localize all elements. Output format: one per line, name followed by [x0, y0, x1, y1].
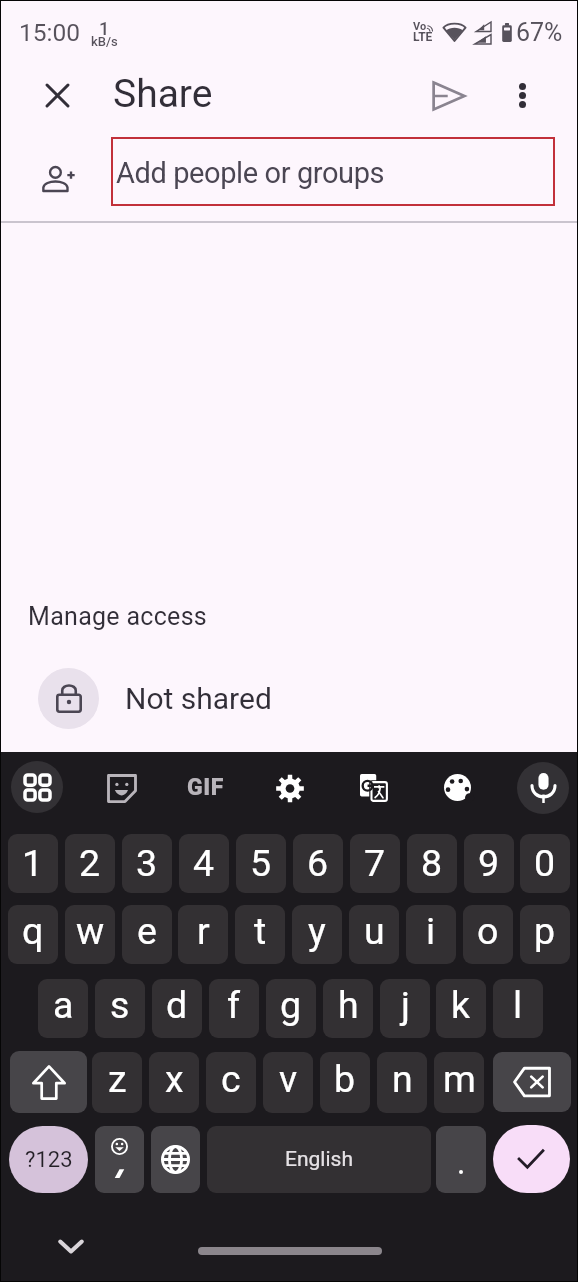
button[interactable]: y — [292, 905, 342, 964]
button[interactable]: r — [178, 905, 228, 964]
staticText: d — [166, 983, 188, 1027]
staticText: Manage access — [28, 602, 208, 631]
button[interactable]: Voice input — [517, 762, 569, 814]
button[interactable]: n — [377, 1052, 427, 1113]
button[interactable]: 3 — [122, 834, 172, 893]
button[interactable]: 7 — [350, 834, 400, 893]
button[interactable]: English — [207, 1126, 431, 1193]
button[interactable]: Period — [436, 1126, 486, 1193]
button[interactable]: d — [152, 979, 202, 1038]
button[interactable]: q — [8, 905, 58, 964]
staticText: Add people or groups — [116, 156, 385, 190]
staticText: r — [197, 909, 210, 953]
staticText: j — [401, 983, 410, 1027]
staticText: z — [108, 1057, 127, 1101]
button[interactable]: Translate — [348, 762, 400, 814]
button[interactable]: Hide keyboard — [48, 1223, 94, 1269]
button[interactable]: Themes — [431, 761, 483, 813]
button[interactable]: Send — [425, 72, 472, 119]
button[interactable]: 2 — [65, 834, 115, 893]
button[interactable]: 6 — [293, 834, 343, 893]
staticText: 15:00 — [19, 18, 81, 47]
staticText: h — [338, 983, 359, 1027]
button[interactable]: m — [434, 1052, 484, 1113]
button[interactable]: s — [95, 979, 145, 1038]
staticText: g — [280, 983, 302, 1027]
button[interactable]: Apps — [11, 761, 63, 813]
staticText: o — [477, 909, 499, 953]
button[interactable]: Change language — [151, 1126, 200, 1193]
button[interactable]: v — [263, 1052, 313, 1113]
button[interactable]: w — [65, 905, 115, 964]
staticText: l — [513, 983, 523, 1027]
button[interactable]: t — [235, 905, 285, 964]
staticText: m — [443, 1057, 476, 1101]
staticText: x — [165, 1057, 184, 1101]
button[interactable]: More options — [499, 72, 546, 119]
staticText: c — [221, 1057, 241, 1101]
button[interactable]: b — [320, 1052, 370, 1113]
button[interactable]: Add people or groups — [111, 137, 555, 206]
button[interactable]: z — [92, 1052, 142, 1113]
staticText: Not shared — [125, 681, 272, 716]
staticText: Vo — [413, 20, 427, 33]
staticText: GIF — [187, 774, 224, 801]
button[interactable]: e — [122, 905, 172, 964]
button[interactable]: Close — [34, 72, 81, 119]
staticText: s — [110, 983, 130, 1027]
button[interactable]: f — [209, 979, 259, 1038]
button[interactable]: Backspace — [493, 1052, 571, 1112]
button[interactable]: k — [436, 979, 486, 1038]
button[interactable]: Stickers — [96, 762, 148, 814]
staticText: w — [76, 909, 105, 953]
button[interactable]: 8 — [407, 834, 457, 893]
staticText: 4 — [193, 841, 215, 885]
staticText: 1 — [22, 841, 44, 885]
button[interactable]: 1 — [8, 834, 58, 893]
staticText: English — [285, 1147, 353, 1172]
button[interactable]: 5 — [236, 834, 286, 893]
button[interactable]: x — [149, 1052, 199, 1113]
staticText: LTE — [413, 30, 433, 44]
staticText: q — [22, 909, 44, 953]
button[interactable]: 4 — [179, 834, 229, 893]
staticText: b — [334, 1057, 356, 1101]
staticText: p — [534, 909, 556, 953]
staticText: 1 — [99, 18, 110, 39]
button[interactable]: Shift — [10, 1051, 87, 1113]
button[interactable]: Not shared — [38, 668, 99, 729]
staticText: ?123 — [25, 1147, 73, 1173]
button[interactable]: g — [266, 979, 316, 1038]
button[interactable]: 9 — [464, 834, 514, 893]
button[interactable]: u — [349, 905, 399, 964]
button[interactable]: Enter — [493, 1125, 570, 1193]
button[interactable]: l — [493, 979, 543, 1038]
staticText: i — [426, 909, 436, 953]
button[interactable]: GIF — [179, 761, 231, 813]
button[interactable]: a — [38, 979, 88, 1038]
button[interactable]: p — [520, 905, 570, 964]
staticText: 5 — [250, 841, 272, 885]
staticText: 67% — [516, 18, 563, 47]
staticText: 7 — [364, 841, 386, 885]
button[interactable]: c — [206, 1052, 256, 1113]
button[interactable]: 0 — [520, 834, 570, 893]
staticText: 0 — [534, 841, 556, 885]
staticText: a — [53, 983, 74, 1027]
button[interactable]: Settings — [264, 762, 316, 814]
staticText: n — [392, 1057, 413, 1101]
staticText: v — [279, 1057, 298, 1101]
button[interactable]: Add people — [37, 154, 85, 202]
staticText: 2 — [79, 841, 101, 885]
button[interactable]: Emoji — [95, 1126, 144, 1193]
staticText: Share — [113, 71, 213, 117]
staticText: u — [364, 909, 385, 953]
staticText: 9 — [478, 841, 500, 885]
button[interactable]: o — [463, 905, 513, 964]
button[interactable]: ?123 — [9, 1126, 88, 1193]
button[interactable]: j — [380, 979, 430, 1038]
staticText: t — [254, 909, 267, 953]
button[interactable]: h — [323, 979, 373, 1038]
staticText: y — [308, 909, 326, 953]
button[interactable]: i — [406, 905, 456, 964]
